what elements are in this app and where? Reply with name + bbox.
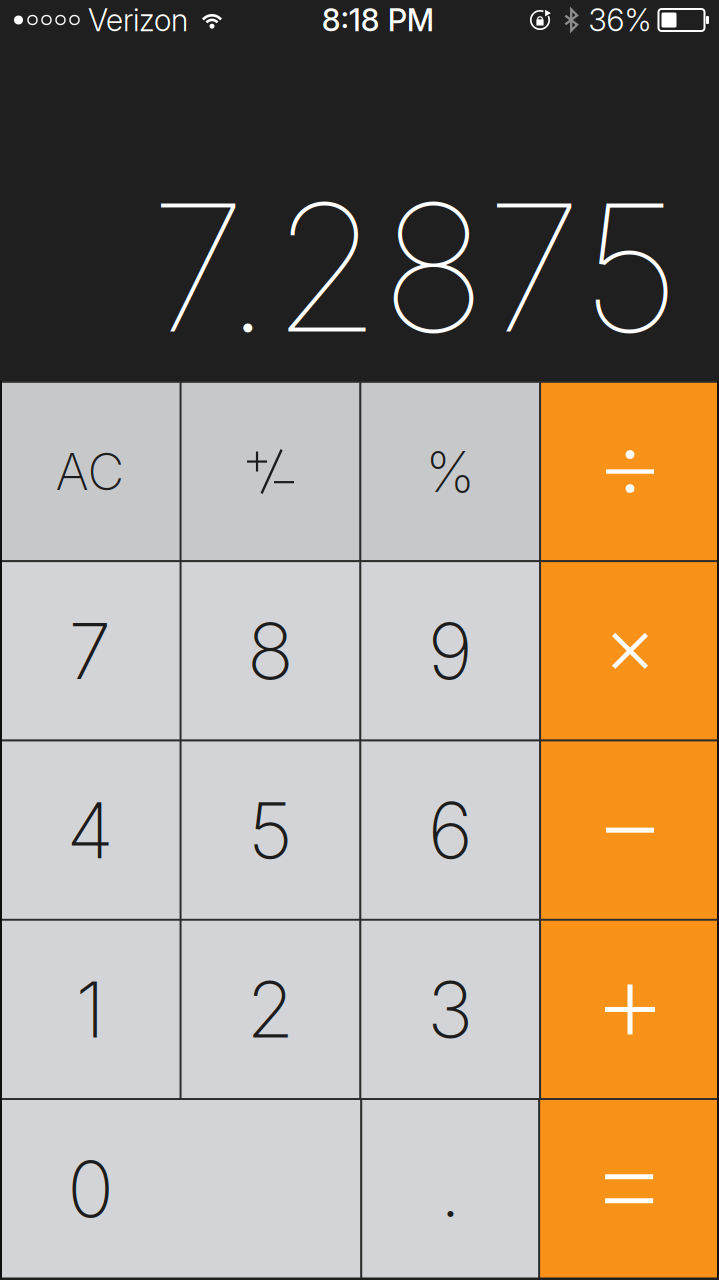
button[interactable]: 8 bbox=[182, 562, 359, 740]
staticText: 0 bbox=[67, 1142, 114, 1236]
staticText: 6 bbox=[428, 783, 473, 877]
button[interactable]: 0 bbox=[1, 1100, 360, 1277]
staticText: 8 bbox=[247, 604, 294, 698]
staticText: 3 bbox=[427, 963, 473, 1056]
button[interactable]: 9 bbox=[361, 562, 539, 740]
button[interactable]: 4 bbox=[0, 741, 180, 919]
staticText: . bbox=[440, 1142, 461, 1236]
staticText: 7 bbox=[68, 604, 111, 698]
staticText: 9 bbox=[428, 604, 473, 698]
staticText: AC bbox=[55, 441, 124, 502]
button[interactable]: 6 bbox=[361, 741, 539, 919]
button[interactable]: AC bbox=[0, 383, 180, 560]
staticText: % bbox=[425, 438, 475, 505]
button[interactable]: 7 bbox=[0, 562, 180, 740]
button[interactable]: 5 bbox=[182, 741, 359, 919]
staticText: 7.2875 bbox=[150, 161, 680, 374]
staticText: 8:18 PM bbox=[322, 1, 434, 38]
staticText: 1 bbox=[75, 963, 104, 1056]
button[interactable]: Plus bbox=[541, 921, 719, 1098]
button[interactable]: Equals bbox=[540, 1100, 718, 1277]
staticText: Verizon bbox=[88, 1, 188, 38]
staticText: 2 bbox=[246, 963, 294, 1056]
staticText: 36% bbox=[588, 1, 651, 38]
button[interactable]: 1 bbox=[0, 921, 180, 1098]
button[interactable]: Minus bbox=[541, 741, 719, 919]
staticText: 5 bbox=[248, 783, 293, 877]
button[interactable]: Multiply bbox=[541, 562, 719, 740]
button[interactable]: Plus minus bbox=[182, 383, 359, 560]
button[interactable]: Divide bbox=[541, 383, 719, 560]
button[interactable]: 3 bbox=[361, 921, 539, 1098]
button[interactable]: % bbox=[361, 383, 539, 560]
button[interactable]: 2 bbox=[182, 921, 359, 1098]
staticText: 4 bbox=[66, 783, 113, 877]
button[interactable]: . bbox=[362, 1100, 538, 1277]
